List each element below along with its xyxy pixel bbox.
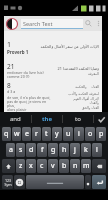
- button[interactable]: o: [85, 127, 95, 141]
- staticText: b: [62, 161, 67, 171]
- button[interactable]: b: [59, 159, 69, 173]
- button[interactable]: 123 Sym: [2, 175, 13, 189]
- button[interactable]: j: [70, 143, 80, 157]
- staticText: a: [9, 145, 13, 155]
- button[interactable]: Settings: [14, 175, 25, 189]
- staticText: t: [45, 129, 48, 139]
- button[interactable]: k: [81, 143, 91, 157]
- staticText: 123 Sym: [4, 178, 12, 187]
- staticText: Proverb 1: [7, 49, 29, 55]
- staticText: p: [99, 129, 104, 139]
- staticText: v: [51, 161, 55, 171]
- staticText: k: [84, 145, 88, 155]
- staticText: n: [73, 161, 78, 171]
- staticText: m: [83, 161, 90, 171]
- staticText: d: [29, 145, 34, 155]
- button[interactable]: Period: [85, 175, 91, 189]
- staticText: j: [74, 145, 76, 155]
- button[interactable]: w: [12, 127, 21, 141]
- staticText: g: [51, 145, 56, 155]
- staticText: لمعرفة الحكمة والأدب لإدراك أقوال الفهم …: [68, 91, 99, 104]
- button[interactable]: App menu: [5, 17, 19, 31]
- button[interactable]: r: [32, 127, 41, 141]
- button[interactable]: Enter: [92, 175, 106, 189]
- staticText: u: [66, 129, 71, 139]
- button[interactable]: Space: [26, 175, 84, 189]
- button[interactable]: z: [16, 159, 25, 173]
- staticText: o: [88, 129, 93, 139]
- staticText: w: [14, 129, 20, 139]
- button[interactable]: u: [63, 127, 73, 141]
- button[interactable]: m: [81, 159, 91, 173]
- staticText: العدل والحكمة: [75, 84, 99, 89]
- button[interactable]: Delete: [92, 159, 106, 173]
- staticText: and: [10, 115, 21, 123]
- staticText: x: [29, 161, 33, 171]
- button[interactable]: the: [32, 112, 62, 126]
- button[interactable]: f: [37, 143, 47, 157]
- staticText: r: [35, 129, 38, 139]
- staticText: endosser du livre (sic) comme 20 (?): [7, 70, 51, 80]
- button[interactable]: s: [16, 143, 25, 157]
- staticText: d 3 a: [7, 89, 16, 94]
- staticText: to: [75, 115, 81, 123]
- staticText: de son, il n'a plus de quoi, pas de quoi…: [7, 95, 53, 113]
- button[interactable]: c: [37, 159, 47, 173]
- staticText: 8: [7, 81, 11, 90]
- staticText: Search Text: [23, 20, 53, 27]
- button[interactable]: v: [48, 159, 58, 173]
- staticText: المعرفة: [88, 72, 99, 76]
- staticText: z: [19, 161, 23, 171]
- button[interactable]: q: [2, 127, 11, 141]
- staticText: e: [25, 129, 29, 139]
- button[interactable]: g: [48, 143, 58, 157]
- staticText: l: [96, 145, 98, 155]
- button[interactable]: Search: [83, 18, 94, 29]
- button[interactable]: a: [6, 143, 15, 157]
- button[interactable]: i: [74, 127, 84, 141]
- button[interactable]: x: [26, 159, 36, 173]
- staticText: الآيات الأولى من سفر الأمثال والحكمة: [40, 44, 99, 49]
- staticText: the: [42, 115, 53, 123]
- button[interactable]: d: [26, 143, 36, 157]
- button[interactable]: l: [92, 143, 102, 157]
- button[interactable]: t: [42, 127, 51, 141]
- staticText: i: [78, 129, 80, 139]
- button[interactable]: to: [63, 112, 93, 126]
- staticText: h: [62, 145, 67, 155]
- button[interactable]: Confirm suggestion: [94, 112, 108, 126]
- button[interactable]: Shift: [2, 159, 15, 173]
- staticText: العدل والحق: [81, 105, 99, 110]
- staticText: وصايا الحكمة (المقدمة) 21: [57, 66, 99, 71]
- button[interactable]: p: [96, 127, 106, 141]
- button[interactable]: More options: [94, 18, 102, 29]
- staticText: 1: [7, 40, 12, 50]
- staticText: s: [19, 145, 23, 155]
- staticText: y: [55, 129, 59, 139]
- button[interactable]: n: [70, 159, 80, 173]
- staticText: q: [4, 129, 9, 139]
- button[interactable]: e: [22, 127, 31, 141]
- staticText: f: [41, 145, 44, 155]
- button[interactable]: h: [59, 143, 69, 157]
- button[interactable]: y: [52, 127, 62, 141]
- staticText: 21: [7, 62, 15, 71]
- button[interactable]: Search Text: [21, 16, 83, 31]
- button[interactable]: and: [0, 112, 31, 126]
- staticText: c: [40, 161, 44, 171]
